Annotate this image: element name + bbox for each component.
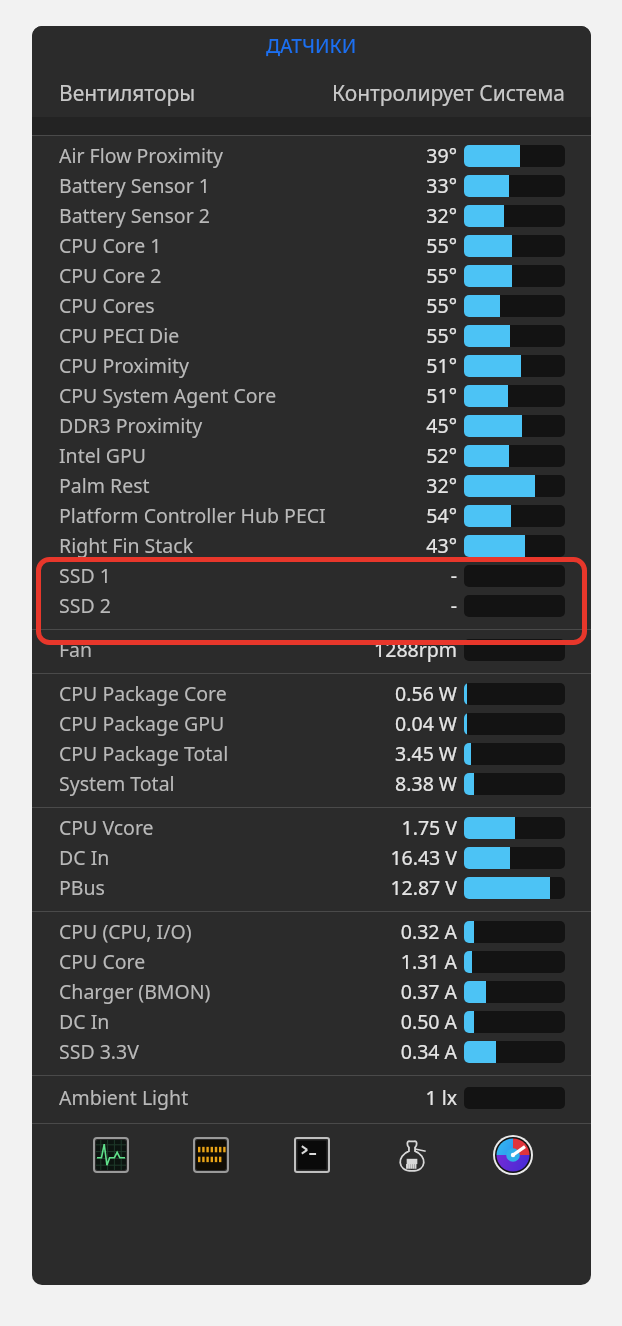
staticText: CPU Package Core	[59, 680, 227, 707]
staticText: Battery Sensor 2	[59, 202, 210, 229]
staticText: 8.38 W	[264, 770, 457, 797]
button[interactable]: CPU (CPU, I/O)	[32, 917, 591, 947]
staticText: DC In	[59, 1008, 110, 1035]
button[interactable]: Palm Rest	[32, 471, 591, 501]
staticText: -	[264, 592, 457, 619]
button[interactable]: CPU System Agent Core	[32, 381, 591, 411]
button[interactable]: Fan	[32, 635, 591, 665]
staticText: Air Flow Proximity	[59, 142, 224, 169]
button[interactable]: DDR3 Proximity	[32, 411, 591, 441]
staticText: 33°	[264, 172, 457, 199]
staticText: Battery Sensor 1	[59, 172, 210, 199]
button[interactable]: Platform Controller Hub PECI	[32, 501, 591, 531]
button[interactable]: SSD 2	[32, 591, 591, 621]
staticText: 0.32 A	[264, 918, 457, 945]
staticText: SSD 1	[59, 562, 111, 589]
staticText: 55°	[264, 232, 457, 259]
button[interactable]: Intel GPU	[32, 441, 591, 471]
button[interactable]: CPU Cores	[32, 291, 591, 321]
staticText: CPU Core 2	[59, 262, 162, 289]
button[interactable]: Sensors graph	[89, 1133, 133, 1177]
staticText: 54°	[264, 502, 457, 529]
button[interactable]: CPU Core	[32, 947, 591, 977]
staticText: 51°	[264, 352, 457, 379]
staticText: PBus	[59, 874, 105, 901]
staticText: Palm Rest	[59, 472, 150, 499]
staticText: 39°	[264, 142, 457, 169]
staticText: 43°	[264, 532, 457, 559]
staticText: CPU Cores	[59, 292, 155, 319]
button[interactable]: CPU Core 1	[32, 231, 591, 261]
staticText: 1.75 V	[264, 814, 457, 841]
button[interactable]: CPU PECI Die	[32, 321, 591, 351]
staticText: SSD 3.3V	[59, 1038, 139, 1065]
staticText: -	[264, 562, 457, 589]
staticText: CPU (CPU, I/O)	[59, 918, 192, 945]
button[interactable]: Dashboard	[491, 1133, 535, 1177]
button[interactable]: CPU Vcore	[32, 813, 591, 843]
staticText: DC In	[59, 844, 110, 871]
button[interactable]: Ambient Light	[32, 1083, 591, 1113]
button[interactable]: CPU Package Core	[32, 679, 591, 709]
staticText: 12.87 V	[264, 874, 457, 901]
staticText: CPU Vcore	[59, 814, 154, 841]
staticText: Ambient Light	[59, 1084, 189, 1111]
staticText: System Total	[59, 770, 175, 797]
button[interactable]: CPU Package Total	[32, 739, 591, 769]
staticText: 51°	[264, 382, 457, 409]
staticText: 16.43 V	[264, 844, 457, 871]
staticText: 0.56 W	[264, 680, 457, 707]
staticText: CPU Package Total	[59, 740, 229, 767]
staticText: 32°	[264, 202, 457, 229]
staticText: SSD 2	[59, 592, 111, 619]
staticText: CPU Package GPU	[59, 710, 225, 737]
button[interactable]: SSD 1	[32, 561, 591, 591]
staticText: Контролирует Система	[332, 79, 565, 108]
button[interactable]: Console	[290, 1133, 334, 1177]
button[interactable]: Right Fin Stack	[32, 531, 591, 561]
staticText: 55°	[264, 292, 457, 319]
button[interactable]: DC In	[32, 1007, 591, 1037]
staticText: DDR3 Proximity	[59, 412, 203, 439]
button[interactable]: CPU Proximity	[32, 351, 591, 381]
staticText: 0.04 W	[264, 710, 457, 737]
button[interactable]: System Total	[32, 769, 591, 799]
staticText: Вентиляторы	[59, 79, 196, 108]
staticText: 1288rpm	[264, 636, 457, 663]
staticText: Charger (BMON)	[59, 978, 211, 1005]
button[interactable]: DC In	[32, 843, 591, 873]
button[interactable]: Diagnostics	[390, 1133, 434, 1177]
staticText: Intel GPU	[59, 442, 147, 469]
staticText: Fan	[59, 636, 93, 663]
staticText: CPU System Agent Core	[59, 382, 277, 409]
staticText: CPU Proximity	[59, 352, 189, 379]
staticText: 1 lx	[264, 1084, 457, 1111]
staticText: Right Fin Stack	[59, 532, 194, 559]
staticText: Platform Controller Hub PECI	[59, 502, 326, 529]
button[interactable]: CPU Core 2	[32, 261, 591, 291]
staticText: 0.37 A	[264, 978, 457, 1005]
button[interactable]: CPU Package GPU	[32, 709, 591, 739]
staticText: 32°	[264, 472, 457, 499]
button[interactable]: Air Flow Proximity	[32, 141, 591, 171]
staticText: 3.45 W	[264, 740, 457, 767]
staticText: 45°	[264, 412, 457, 439]
staticText: 55°	[264, 322, 457, 349]
button[interactable]: Charger (BMON)	[32, 977, 591, 1007]
button[interactable]: Warnings	[189, 1133, 233, 1177]
staticText: 55°	[264, 262, 457, 289]
staticText: 1.31 A	[264, 948, 457, 975]
staticText: 52°	[264, 442, 457, 469]
button[interactable]: PBus	[32, 873, 591, 903]
staticText: ДАТЧИКИ	[266, 33, 357, 59]
button[interactable]: SSD 3.3V	[32, 1037, 591, 1067]
staticText: 0.34 A	[264, 1038, 457, 1065]
button[interactable]: Battery Sensor 2	[32, 201, 591, 231]
staticText: CPU Core	[59, 948, 146, 975]
staticText: CPU PECI Die	[59, 322, 180, 349]
staticText: 0.50 A	[264, 1008, 457, 1035]
button[interactable]: Battery Sensor 1	[32, 171, 591, 201]
staticText: CPU Core 1	[59, 232, 162, 259]
